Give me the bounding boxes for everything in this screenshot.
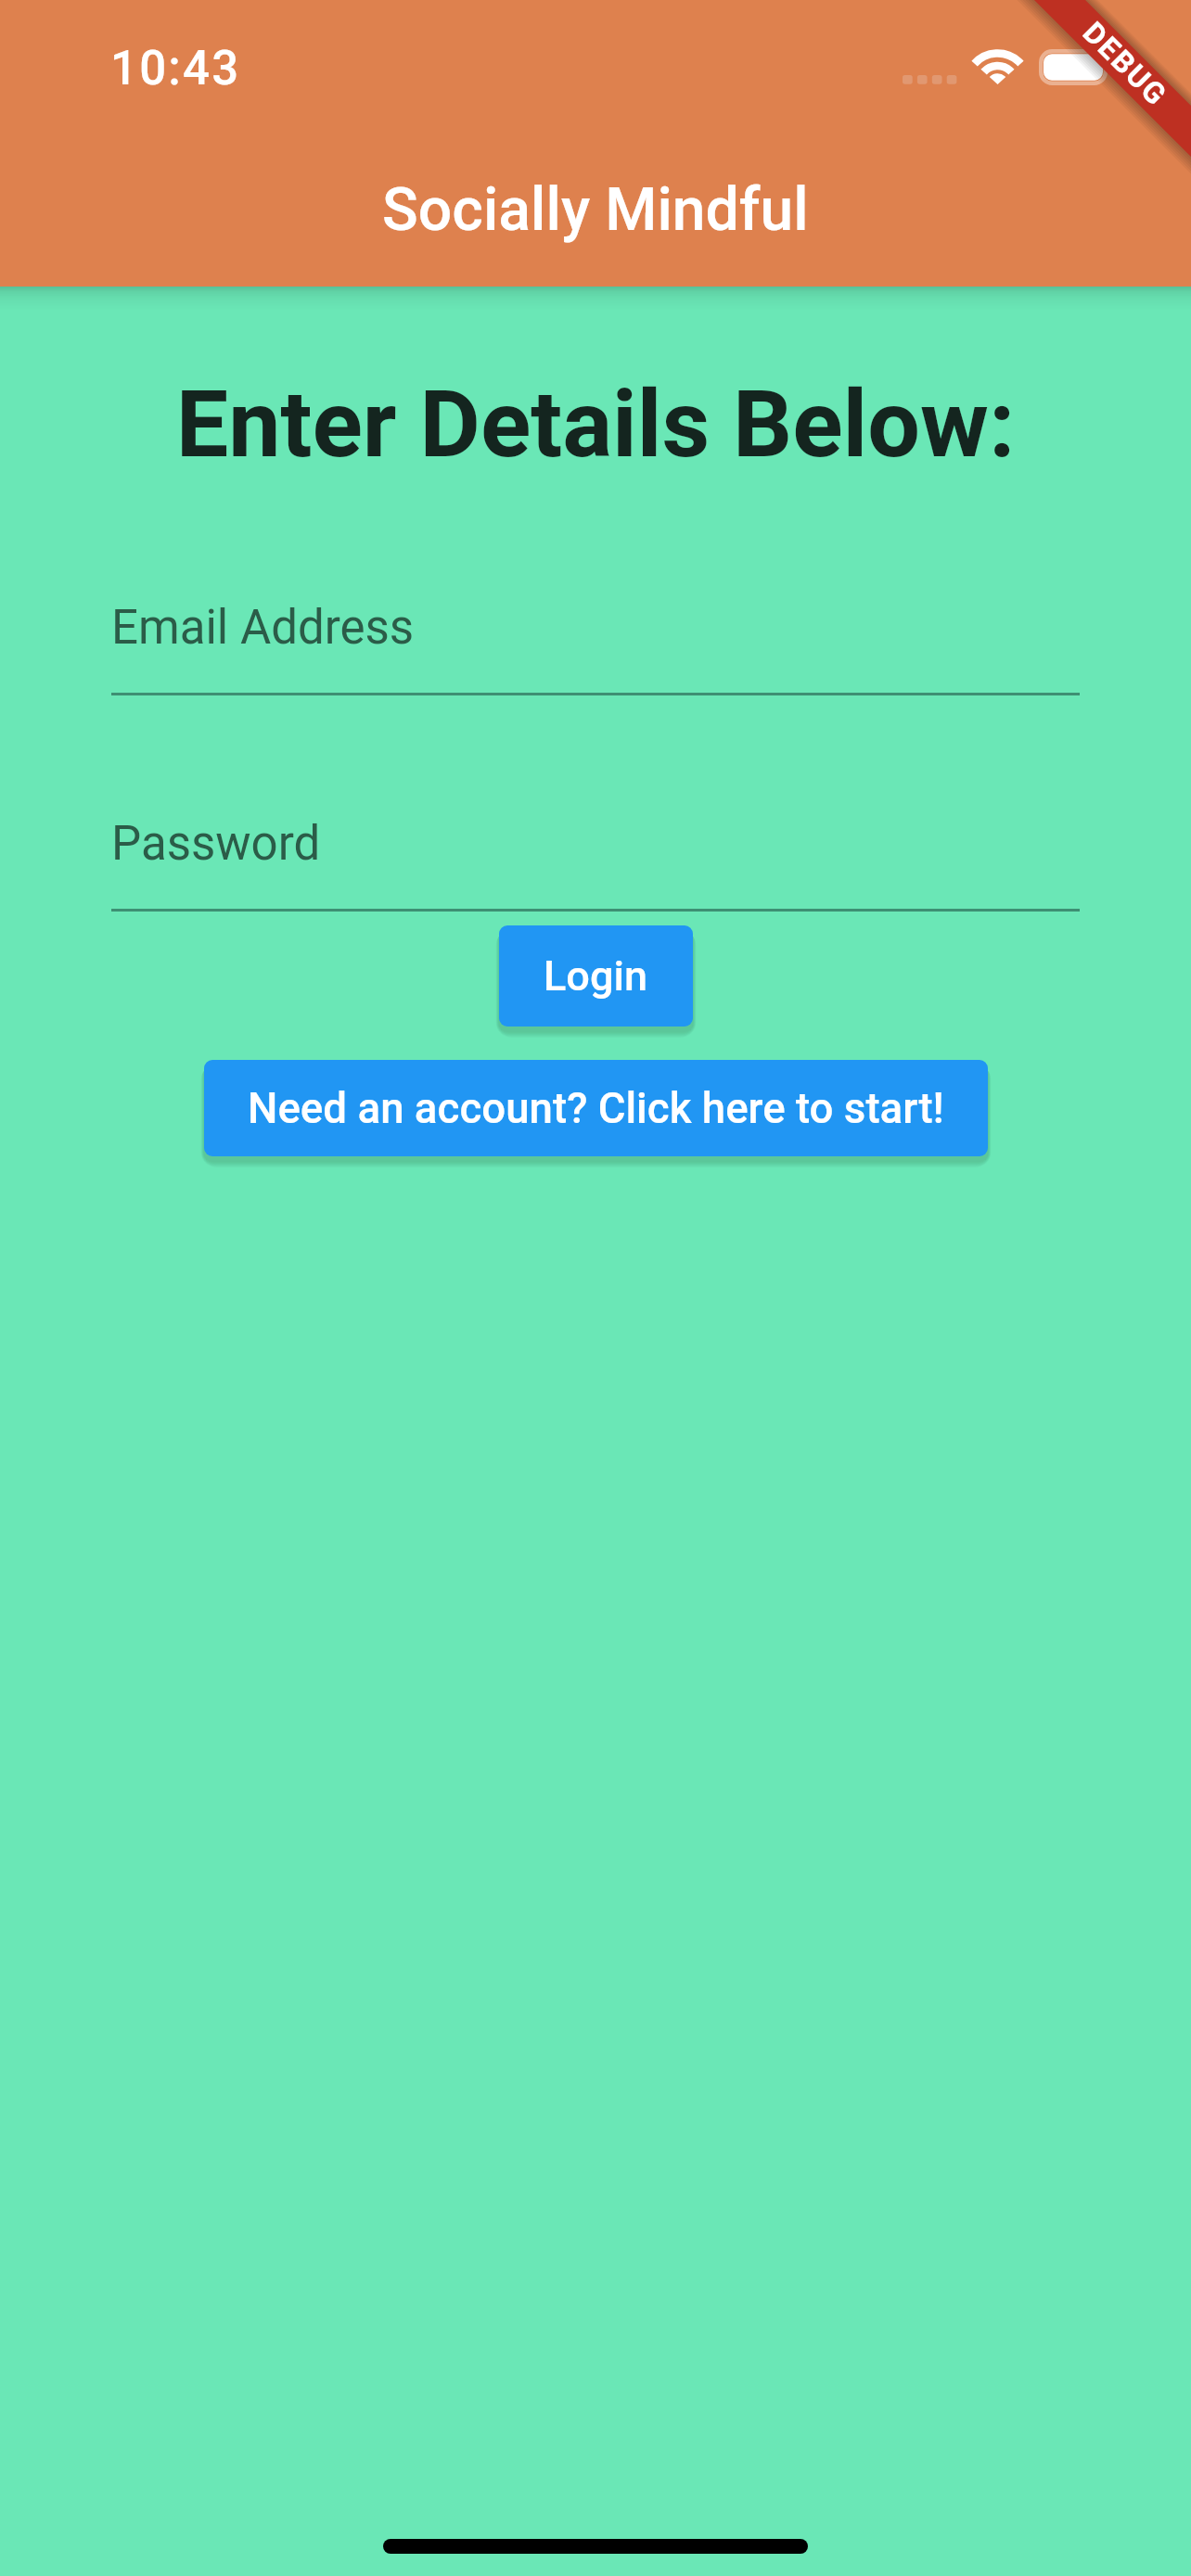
staticText: Email Address	[111, 600, 415, 656]
button[interactable]: Password	[111, 816, 1080, 912]
other: Wi-Fi	[974, 49, 1021, 84]
button[interactable]: Login	[499, 925, 693, 1027]
staticText: Need an account? Click here to start!	[248, 1084, 944, 1133]
button[interactable]: Need an account? Click here to start!	[204, 1060, 988, 1156]
button[interactable]: Email Address	[111, 600, 1080, 695]
staticText: Socially Mindful	[382, 174, 809, 244]
staticText: Enter Details Below:	[0, 370, 1191, 479]
staticText: 10:43	[110, 41, 241, 96]
other: Battery	[1039, 49, 1108, 85]
staticText: Login	[544, 951, 648, 1001]
staticText: Password	[111, 816, 321, 872]
staticText: DEBUG	[1076, 15, 1175, 114]
other: Cellular signal	[903, 75, 957, 84]
